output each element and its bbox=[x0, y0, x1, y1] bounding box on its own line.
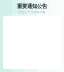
staticText: 重要通知公告 bbox=[17, 3, 47, 10]
staticText: 安全生产月活动方案 bbox=[18, 11, 45, 14]
